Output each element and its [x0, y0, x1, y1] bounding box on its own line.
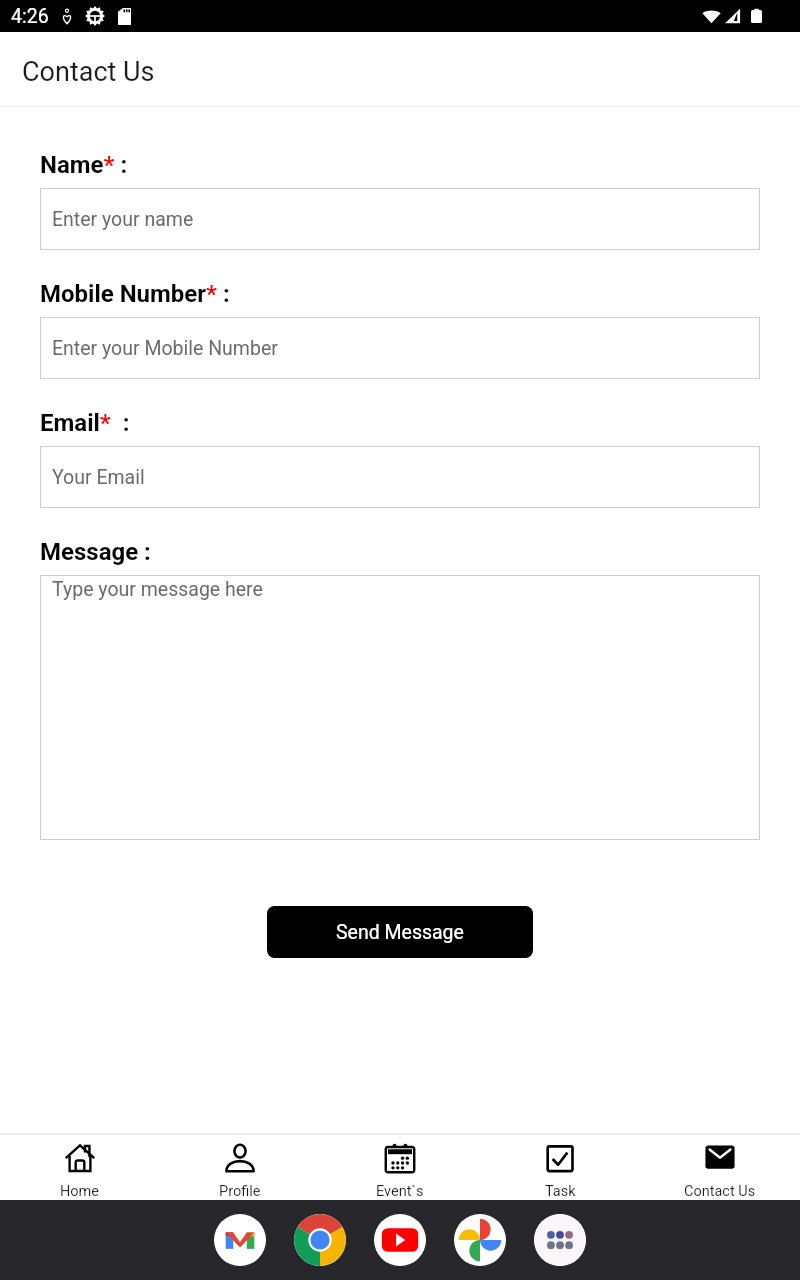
- button[interactable]: Your Email: [40, 446, 760, 508]
- button[interactable]: Contact Us: [640, 1135, 800, 1200]
- staticText: Your Email: [52, 466, 145, 489]
- staticText: Profile: [219, 1183, 261, 1200]
- staticText: Send Message: [336, 921, 464, 944]
- button[interactable]: Photos: [454, 1214, 506, 1266]
- staticText: Contact Us: [684, 1183, 756, 1200]
- button[interactable]: Home: [0, 1135, 160, 1200]
- staticText: Home: [60, 1183, 100, 1200]
- staticText: Task: [545, 1183, 576, 1200]
- staticText: Message :: [40, 538, 151, 566]
- button[interactable]: Enter your Mobile Number: [40, 317, 760, 379]
- button[interactable]: Gmail: [214, 1214, 266, 1266]
- button[interactable]: Task: [480, 1135, 640, 1200]
- button[interactable]: All apps: [534, 1214, 586, 1266]
- button[interactable]: YouTube: [374, 1214, 426, 1266]
- staticText: Enter your Mobile Number: [52, 337, 278, 360]
- button[interactable]: Profile: [160, 1135, 320, 1200]
- staticText: Contact Us: [22, 56, 155, 88]
- staticText: Enter your name: [52, 208, 194, 231]
- button[interactable]: Type your message here: [40, 575, 760, 840]
- staticText: Email* :: [40, 409, 130, 437]
- button[interactable]: Enter your name: [40, 188, 760, 250]
- button[interactable]: Chrome: [294, 1214, 346, 1266]
- staticText: 4:26: [11, 5, 49, 28]
- button[interactable]: Event`s: [320, 1135, 480, 1200]
- staticText: Name* :: [40, 151, 128, 179]
- staticText: Type your message here: [52, 578, 263, 601]
- button[interactable]: Send Message: [267, 906, 533, 958]
- staticText: Event`s: [376, 1183, 424, 1200]
- staticText: Mobile Number* :: [40, 280, 230, 308]
